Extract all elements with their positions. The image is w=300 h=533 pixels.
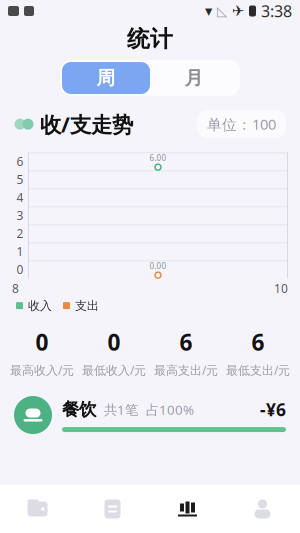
staticText: 餐饮 bbox=[62, 399, 96, 420]
staticText: 月 bbox=[184, 66, 203, 89]
button[interactable]: 统计 bbox=[150, 485, 225, 533]
staticText: 8 bbox=[12, 280, 19, 296]
staticText: 最低支出/元 bbox=[226, 362, 290, 378]
staticText: 6 bbox=[179, 327, 192, 357]
staticText: -¥6 bbox=[260, 398, 286, 421]
staticText: 最高收入/元 bbox=[10, 362, 74, 378]
staticText: 单位：100 bbox=[207, 114, 276, 134]
staticText: 0.00 bbox=[149, 260, 166, 271]
staticText: 2 bbox=[16, 225, 23, 241]
staticText: 3:38 bbox=[261, 0, 292, 22]
staticText: 占100% bbox=[146, 401, 194, 418]
staticText: 3 bbox=[16, 207, 23, 223]
staticText: 5 bbox=[16, 171, 23, 187]
button[interactable]: 我的 bbox=[225, 485, 300, 533]
staticText: 0 bbox=[16, 261, 23, 277]
staticText: 0 bbox=[35, 327, 48, 357]
staticText: 6 bbox=[16, 153, 23, 169]
staticText: 统计 bbox=[127, 25, 173, 53]
staticText: 6.00 bbox=[149, 152, 166, 163]
staticText: 收入 bbox=[28, 298, 52, 313]
staticText: ◺ bbox=[217, 3, 227, 18]
staticText: 支出 bbox=[75, 298, 99, 313]
staticText: 共1笔 bbox=[104, 401, 138, 418]
button[interactable]: 周 bbox=[62, 62, 150, 94]
staticText: 4 bbox=[16, 189, 23, 205]
staticText: ✈ bbox=[232, 3, 244, 19]
button[interactable]: 月 bbox=[150, 62, 238, 94]
button[interactable]: 餐饮 bbox=[0, 396, 300, 434]
staticText: 周 bbox=[96, 66, 115, 89]
staticText: 1 bbox=[16, 243, 23, 259]
staticText: 最低收入/元 bbox=[82, 362, 146, 378]
staticText: 10 bbox=[274, 280, 288, 296]
button[interactable]: 明细 bbox=[75, 485, 150, 533]
staticText: ▾ bbox=[205, 3, 212, 19]
staticText: 最高支出/元 bbox=[154, 362, 218, 378]
button[interactable]: 账本 bbox=[0, 485, 75, 533]
staticText: 6 bbox=[251, 327, 264, 357]
staticText: 0 bbox=[107, 327, 120, 357]
staticText: 收/支走势 bbox=[40, 110, 133, 138]
